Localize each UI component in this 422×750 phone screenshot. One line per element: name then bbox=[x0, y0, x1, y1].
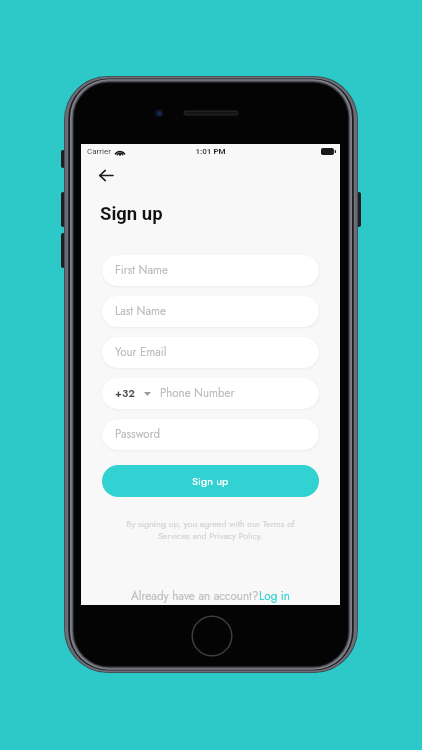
staticText: First Name bbox=[115, 262, 168, 279]
button[interactable]: First Name bbox=[102, 255, 319, 286]
staticText: Password bbox=[115, 426, 161, 443]
staticText: Phone Number bbox=[160, 385, 235, 402]
staticText: Sign up bbox=[192, 473, 229, 489]
staticText: Last Name bbox=[115, 303, 166, 320]
staticText: Carrier bbox=[87, 147, 111, 156]
button[interactable]: Sign up bbox=[102, 465, 319, 497]
staticText: 1:01 PM bbox=[81, 147, 340, 156]
button[interactable]: Password bbox=[102, 419, 319, 450]
staticText: Already have an account? bbox=[131, 587, 259, 604]
staticText: By signing up, you agreed with our Terms… bbox=[102, 517, 319, 542]
staticText: +32 bbox=[115, 386, 135, 401]
button[interactable]: +32 bbox=[102, 378, 319, 409]
staticText: Your Email bbox=[115, 344, 167, 361]
button[interactable]: Last Name bbox=[102, 296, 319, 327]
staticText: Sign up bbox=[100, 203, 163, 225]
button[interactable]: Log in bbox=[259, 587, 290, 604]
button[interactable]: Your Email bbox=[102, 337, 319, 368]
button[interactable]: Back bbox=[87, 156, 125, 194]
